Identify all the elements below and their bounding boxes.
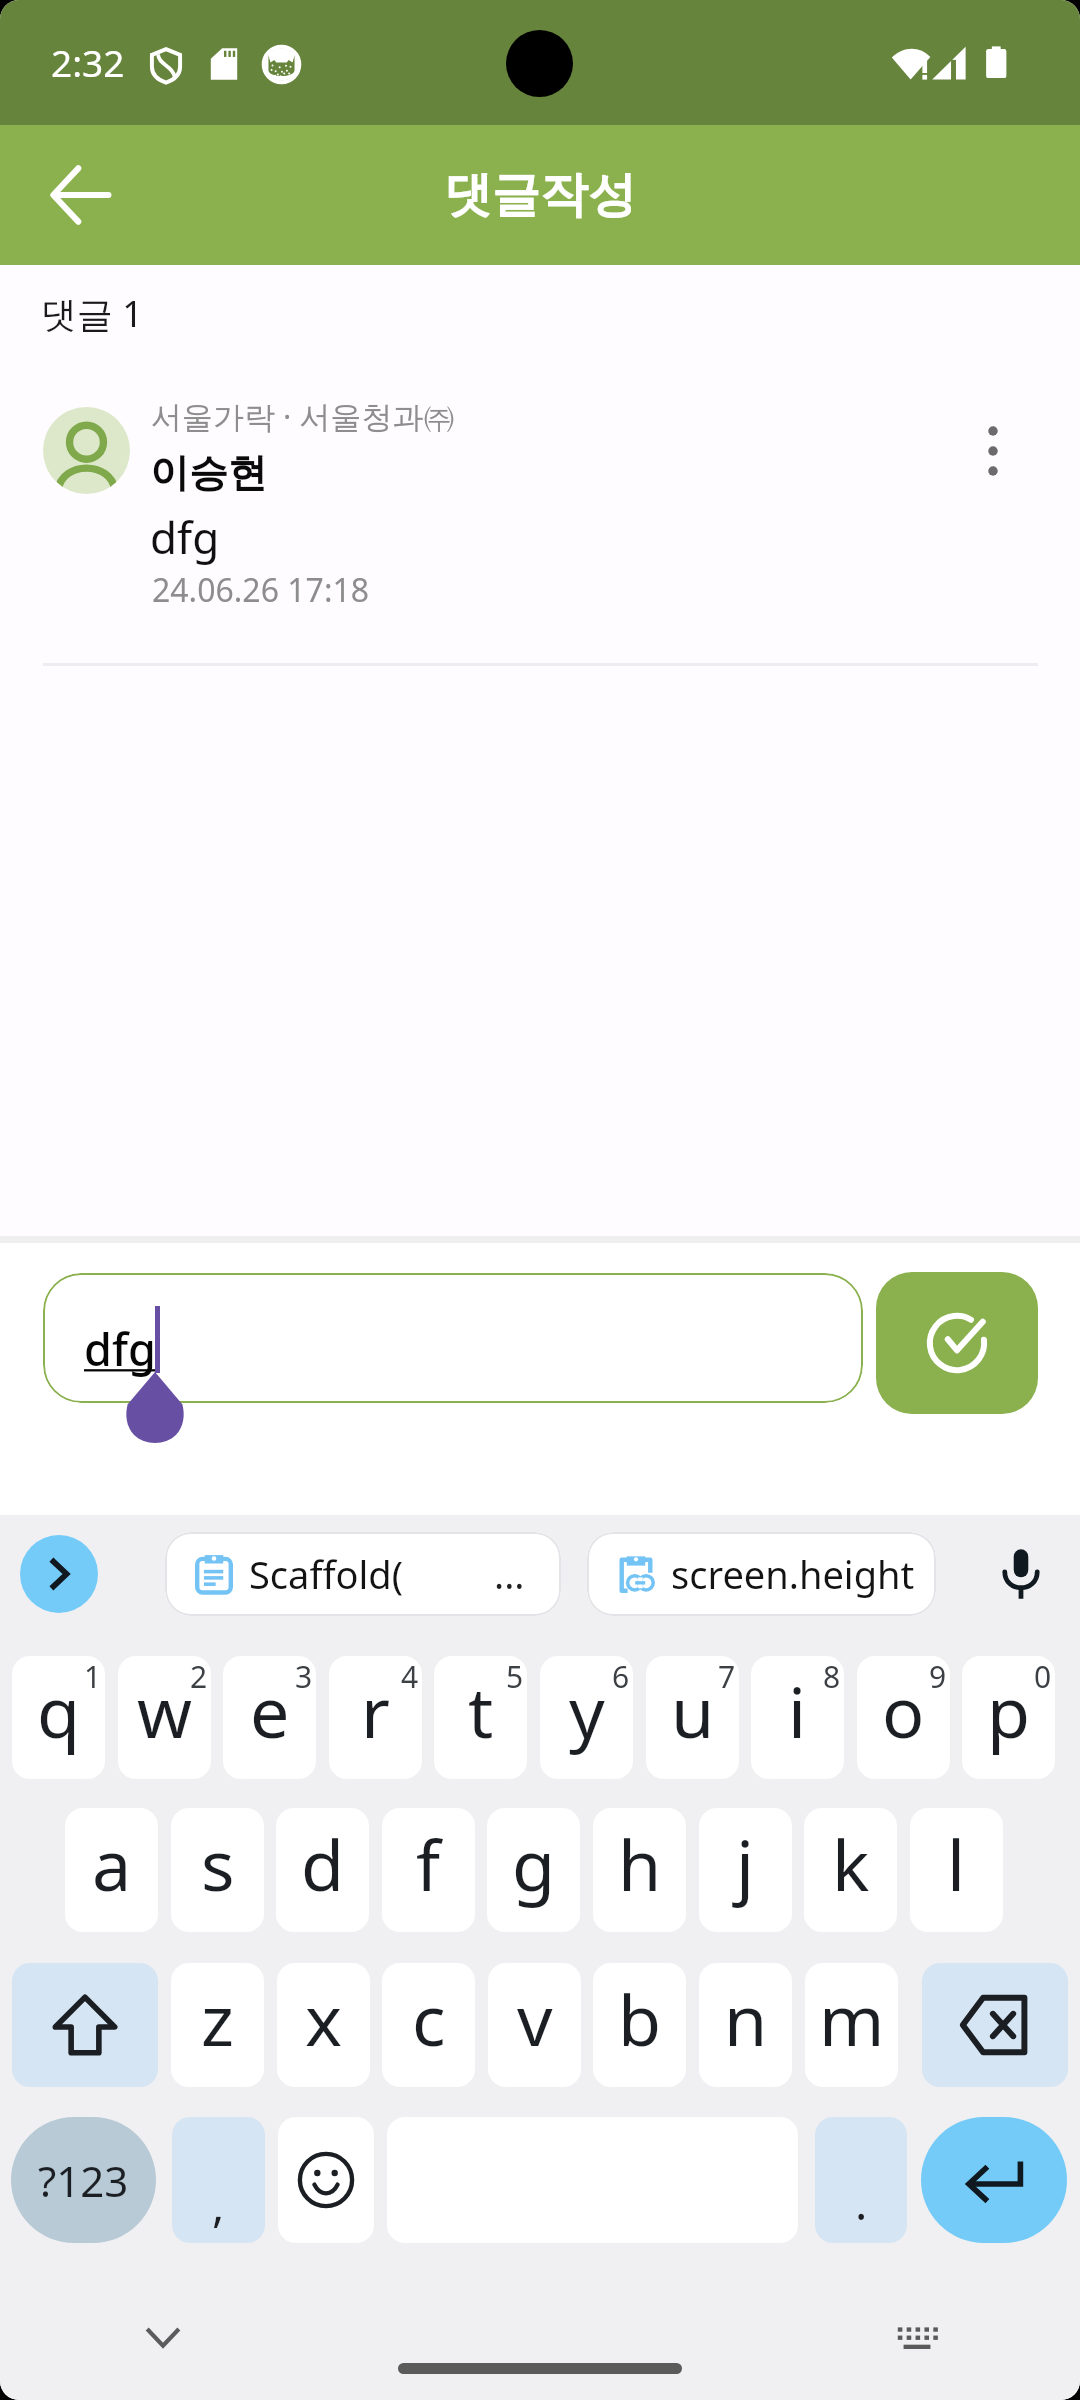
button[interactable]: u <box>646 1656 739 1779</box>
button[interactable]: Enter <box>921 2117 1067 2243</box>
button[interactable]: v <box>488 1963 581 2087</box>
staticText: c <box>412 1971 446 2066</box>
staticText: g <box>512 1816 556 1911</box>
button[interactable]: ?123 <box>11 2117 156 2243</box>
button[interactable]: Change keyboard <box>879 2299 955 2375</box>
button[interactable]: l <box>910 1808 1003 1932</box>
staticText: dfg <box>150 507 220 567</box>
staticText: . <box>855 2171 868 2234</box>
button[interactable]: h <box>593 1808 686 1932</box>
button[interactable]: Scaffold( <box>165 1532 561 1616</box>
staticText: j <box>736 1816 755 1911</box>
button[interactable]: i <box>751 1656 844 1779</box>
staticText: 2:32 <box>51 37 125 87</box>
button[interactable]: More options <box>948 406 1038 496</box>
staticText: ... <box>494 1548 525 1600</box>
button[interactable]: Shift <box>12 1963 158 2087</box>
staticText: a <box>92 1816 132 1911</box>
button[interactable]: k <box>804 1808 897 1932</box>
button[interactable]: b <box>593 1963 686 2087</box>
staticText: 9 <box>929 1656 947 1697</box>
staticText: 이승현 <box>150 448 267 497</box>
staticText: k <box>832 1816 870 1911</box>
button[interactable]: Backspace <box>922 1963 1068 2087</box>
staticText: p <box>987 1663 1031 1758</box>
staticText: t <box>468 1663 494 1758</box>
button[interactable]: o <box>857 1656 950 1779</box>
staticText: , <box>212 2173 225 2236</box>
button[interactable]: t <box>434 1656 527 1779</box>
staticText: 8 <box>823 1656 841 1697</box>
staticText: 서울가락 · 서울청과㈜ <box>151 395 455 437</box>
button[interactable]: p <box>962 1656 1055 1779</box>
button[interactable]: s <box>171 1808 264 1932</box>
staticText: u <box>671 1663 715 1758</box>
button[interactable]: x <box>277 1963 370 2087</box>
button[interactable]: r <box>329 1656 422 1779</box>
staticText: e <box>250 1663 290 1758</box>
staticText: q <box>37 1663 81 1758</box>
staticText: 24.06.26 17:18 <box>152 568 370 612</box>
staticText: l <box>947 1816 966 1911</box>
button[interactable]: f <box>382 1808 475 1932</box>
button[interactable] <box>43 1273 863 1403</box>
button[interactable]: n <box>699 1963 792 2087</box>
button[interactable]: a <box>65 1808 158 1932</box>
staticText: screen.height <box>671 1548 915 1600</box>
staticText: n <box>724 1971 768 2066</box>
staticText: 7 <box>718 1656 736 1697</box>
staticText: w <box>137 1663 193 1758</box>
staticText: 0 <box>1034 1656 1052 1697</box>
staticText: x <box>305 1971 343 2066</box>
button[interactable]: c <box>382 1963 475 2087</box>
staticText: 댓글 1 <box>41 289 143 338</box>
button[interactable]: j <box>699 1808 792 1932</box>
staticText: 댓글작성 <box>444 165 636 225</box>
staticText: y <box>569 1663 605 1758</box>
staticText: b <box>618 1971 662 2066</box>
staticText: ?123 <box>38 2152 129 2209</box>
button[interactable]: , <box>172 2117 265 2243</box>
staticText: 6 <box>612 1656 630 1697</box>
button[interactable]: m <box>805 1963 898 2087</box>
button[interactable]: Submit comment <box>876 1272 1038 1414</box>
button[interactable]: z <box>171 1963 264 2087</box>
button[interactable]: Hide keyboard <box>125 2299 201 2375</box>
button[interactable]: Back <box>28 143 132 247</box>
staticText: v <box>517 1971 553 2066</box>
staticText: z <box>201 1971 234 2066</box>
staticText: o <box>882 1663 925 1758</box>
staticText: d <box>301 1816 345 1911</box>
staticText: 4 <box>401 1656 419 1697</box>
staticText: 5 <box>506 1656 524 1697</box>
staticText: 3 <box>295 1656 313 1697</box>
button[interactable]: y <box>540 1656 633 1779</box>
button[interactable]: d <box>276 1808 369 1932</box>
staticText: f <box>416 1816 441 1911</box>
button[interactable]: e <box>223 1656 316 1779</box>
button[interactable]: . <box>815 2117 907 2243</box>
staticText: 1 <box>84 1656 102 1697</box>
staticText: Scaffold( <box>249 1548 404 1600</box>
button[interactable]: Expand toolbar <box>20 1535 98 1613</box>
staticText: 2 <box>190 1656 208 1697</box>
button[interactable]: screen.height <box>587 1532 936 1616</box>
staticText: m <box>819 1971 885 2066</box>
button[interactable]: w <box>118 1656 211 1779</box>
staticText: dfg <box>84 1318 156 1379</box>
button[interactable]: Emoji <box>278 2117 374 2243</box>
button[interactable]: Voice input <box>984 1537 1058 1611</box>
button[interactable]: g <box>487 1808 580 1932</box>
staticText: s <box>201 1816 235 1911</box>
staticText: i <box>788 1663 807 1758</box>
button[interactable]: q <box>12 1656 105 1779</box>
staticText: h <box>618 1816 662 1911</box>
staticText: r <box>361 1663 390 1758</box>
